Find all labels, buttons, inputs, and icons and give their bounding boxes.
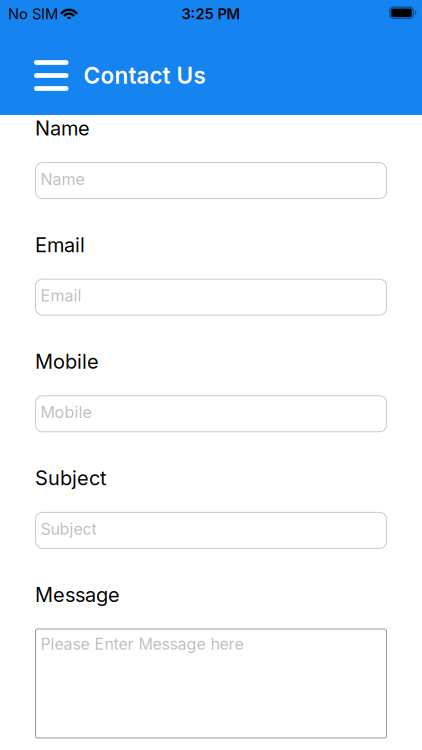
button[interactable]: Subject — [35, 512, 387, 549]
staticText: 3:25 PM — [181, 5, 240, 23]
staticText: Email — [35, 233, 85, 257]
staticText: Message — [35, 583, 120, 606]
staticText: Email — [40, 286, 81, 305]
staticText: Please Enter Message here — [40, 634, 243, 653]
staticText: No SIM — [8, 5, 58, 23]
staticText: Contact Us — [83, 62, 205, 89]
staticText: Mobile — [40, 403, 91, 422]
button[interactable]: Menu — [34, 60, 68, 91]
button[interactable]: Email — [35, 279, 387, 316]
staticText: Mobile — [35, 350, 99, 373]
staticText: Name — [35, 116, 90, 140]
button[interactable]: Name — [35, 162, 387, 199]
staticText: Name — [40, 170, 84, 189]
button[interactable]: Mobile — [35, 395, 387, 432]
staticText: Subject — [40, 519, 96, 538]
staticText: Subject — [35, 466, 107, 490]
button[interactable]: Message — [35, 628, 387, 738]
